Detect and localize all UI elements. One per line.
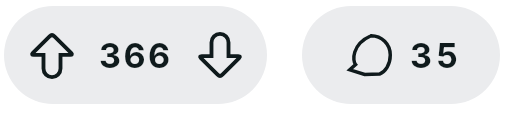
button[interactable]: Downvote xyxy=(172,6,267,104)
staticText: 366 xyxy=(99,35,172,76)
button[interactable]: Upvote xyxy=(4,6,99,104)
staticText: 35 xyxy=(410,35,462,76)
button[interactable]: Comments xyxy=(302,6,500,104)
